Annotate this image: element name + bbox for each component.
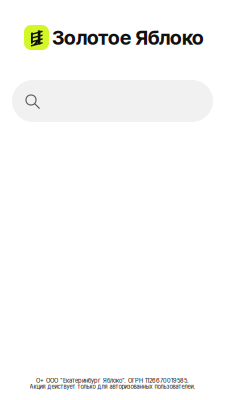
- staticText: Акция действует только для авторизованны…: [29, 383, 195, 390]
- button[interactable]: Поиск: [12, 80, 213, 122]
- staticText: Золотое Яблоко: [52, 25, 204, 49]
- staticText: О+ ООО "Екатеринбург Яблоко". ОГРН 11266…: [36, 377, 189, 384]
- button[interactable]: Золотое Яблоко: [24, 25, 215, 50]
